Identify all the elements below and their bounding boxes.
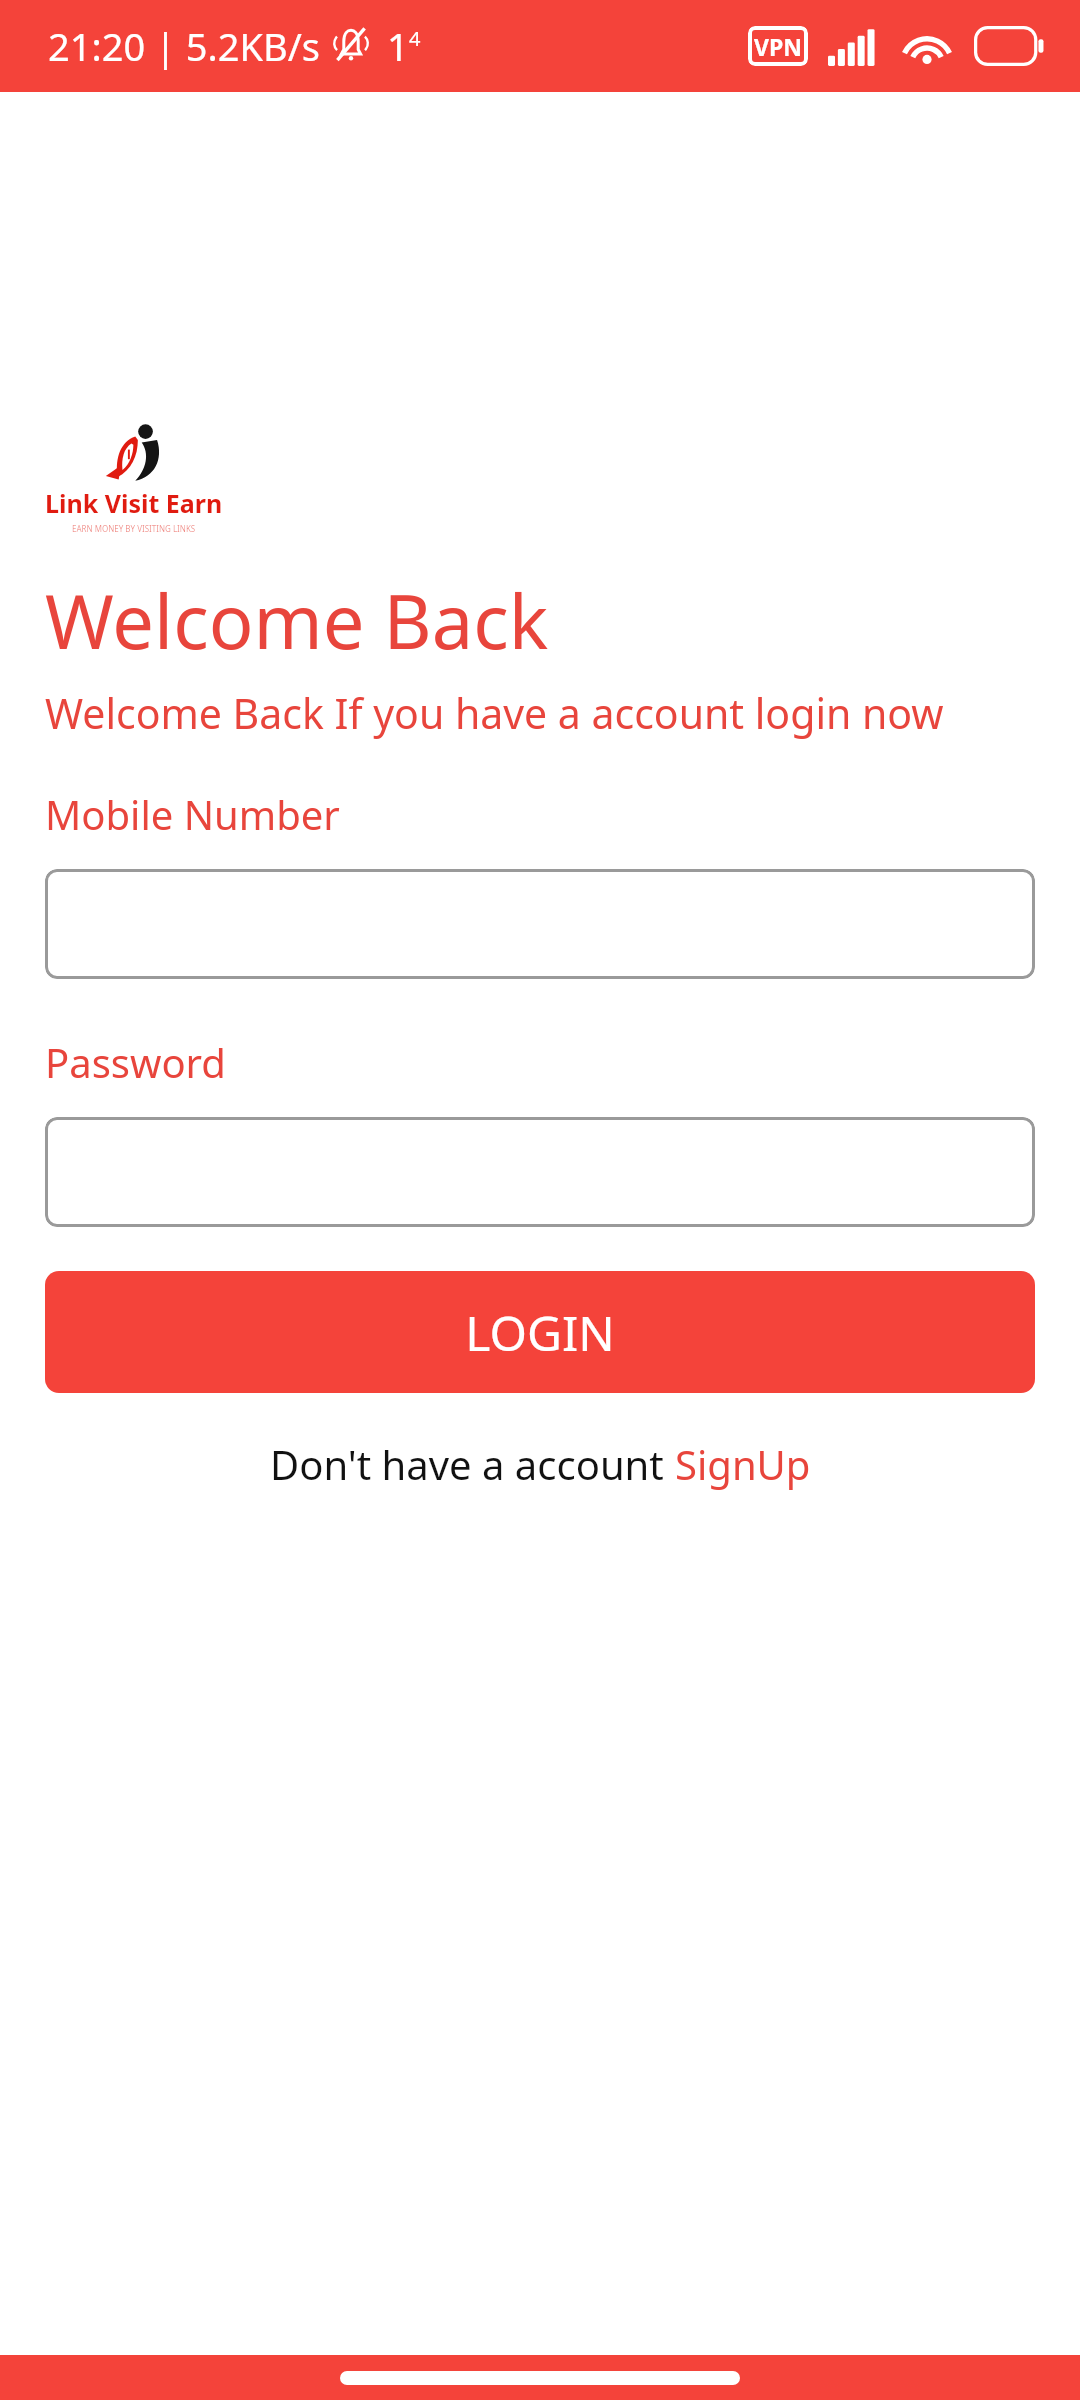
staticText: Welcome Back	[45, 570, 549, 671]
staticText: VPN	[754, 31, 802, 62]
staticText: 21:20 | 5.2KB/s	[48, 20, 321, 72]
staticText: 1	[387, 20, 409, 72]
staticText: Link Visit Earn	[45, 486, 223, 520]
staticText: Mobile Number	[45, 787, 340, 841]
button[interactable]	[45, 1117, 1035, 1227]
staticText: Don't have a account	[270, 1437, 675, 1491]
staticText: EARN MONEY BY VISITING LINKS	[72, 523, 196, 534]
staticText: Password	[45, 1035, 226, 1089]
button[interactable]	[45, 869, 1035, 979]
staticText: LOGIN	[465, 1300, 615, 1365]
button[interactable]: Don't have a account	[0, 1437, 1080, 1491]
button[interactable]: LOGIN	[45, 1271, 1035, 1393]
staticText: Welcome Back If you have a account login…	[45, 685, 944, 741]
staticText: 4	[409, 25, 421, 52]
staticText: SignUp	[675, 1437, 811, 1491]
